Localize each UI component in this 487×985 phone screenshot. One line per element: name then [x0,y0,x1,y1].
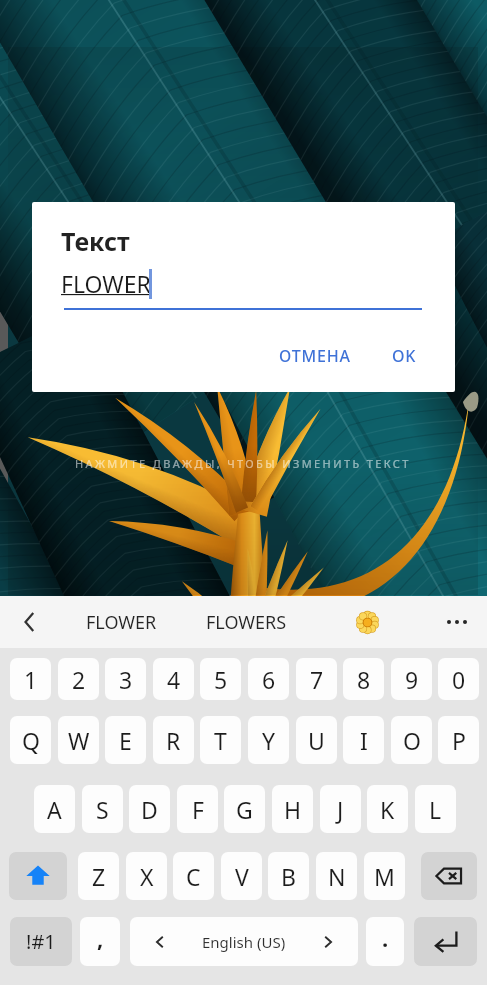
staticText: O [403,725,421,756]
staticText: 8 [357,664,371,695]
button[interactable]: P [438,716,479,764]
staticText: Y [262,725,276,756]
staticText: . [382,923,389,953]
staticText: B [281,861,296,892]
button[interactable]: 9 [391,658,432,700]
staticText: W [68,725,90,756]
staticText: N [328,861,346,892]
staticText: T [214,725,227,756]
button[interactable]: K [367,785,408,833]
button[interactable]: Z [78,852,119,900]
other: Next language [320,934,336,950]
button[interactable]: J [320,785,361,833]
staticText: H [284,794,302,825]
button[interactable]: 8 [343,658,384,700]
button[interactable]: O [391,716,432,764]
button[interactable]: Shift [9,852,67,900]
staticText: OK [392,345,417,367]
button[interactable]: N [316,852,357,900]
button[interactable]: T [200,716,241,764]
staticText: 6 [262,664,276,695]
button[interactable]: Q [10,716,51,764]
staticText: !#1 [26,928,56,955]
staticText: F [192,794,204,825]
button[interactable]: More options [437,602,477,642]
button[interactable]: 2 [58,658,99,700]
button[interactable]: W [58,716,99,764]
staticText: English (US) [202,932,286,952]
staticText: 5 [214,664,228,695]
button[interactable]: FLOWER [66,596,176,648]
staticText: 1 [24,664,38,695]
staticText: ОТМЕНА [279,345,351,367]
staticText: FLOWER [86,610,157,635]
staticText: FLOWERS [206,610,287,635]
other: Previous language [152,934,168,950]
staticText: 2 [72,664,86,695]
staticText: 7 [310,664,324,695]
staticText: 3 [119,664,133,695]
button[interactable]: V [221,852,262,900]
button[interactable]: H [272,785,313,833]
staticText: Z [92,861,106,892]
staticText: , [97,923,104,953]
button[interactable]: F [177,785,218,833]
button[interactable]: OK [375,338,433,374]
staticText: C [186,861,201,892]
button[interactable]: B [268,852,309,900]
button[interactable]: Back [12,604,48,640]
staticText: НАЖМИТЕ ДВАЖДЫ, ЧТОБЫ ИЗМЕНИТЬ ТЕКСТ [75,456,411,471]
button[interactable]: U [296,716,337,764]
button[interactable]: Y [248,716,289,764]
staticText: P [452,725,466,756]
button[interactable]: A [34,785,75,833]
staticText: G [236,794,253,825]
button[interactable]: I [343,716,384,764]
button[interactable]: G [224,785,265,833]
staticText: M [374,861,395,892]
staticText: Q [22,725,40,756]
staticText: J [337,794,344,825]
button[interactable]: Emoji [348,603,386,641]
staticText: FLOWER [61,268,151,299]
button[interactable]: English (US) [130,917,358,966]
staticText: 4 [167,664,181,695]
staticText: V [235,861,249,892]
staticText: X [140,861,154,892]
staticText: K [380,794,395,825]
button[interactable]: 7 [296,658,337,700]
button[interactable]: Enter [414,917,477,966]
button[interactable]: 5 [200,658,241,700]
staticText: Текст [61,224,130,258]
button[interactable]: Backspace [421,852,477,900]
button[interactable]: , [80,917,120,966]
button[interactable]: 3 [105,658,146,700]
staticText: E [119,725,132,756]
staticText: A [47,794,62,825]
staticText: L [429,794,442,825]
button[interactable]: R [153,716,194,764]
button[interactable]: S [82,785,123,833]
button[interactable]: E [105,716,146,764]
staticText: 9 [405,664,419,695]
staticText: I [360,725,368,756]
button[interactable]: 1 [10,658,51,700]
button[interactable]: ОТМЕНА [262,338,367,374]
button[interactable]: . [366,917,404,966]
button[interactable]: 0 [438,658,479,700]
button[interactable]: 6 [248,658,289,700]
button[interactable]: C [173,852,214,900]
button[interactable]: 4 [153,658,194,700]
staticText: U [308,725,325,756]
button[interactable]: FLOWERS [190,596,302,648]
staticText: D [141,794,158,825]
staticText: 0 [452,664,466,695]
button[interactable]: L [415,785,456,833]
button[interactable]: M [364,852,405,900]
staticText: R [166,725,181,756]
button[interactable]: D [129,785,170,833]
button[interactable]: !#1 [10,917,72,966]
button[interactable]: X [126,852,167,900]
staticText: S [96,794,109,825]
